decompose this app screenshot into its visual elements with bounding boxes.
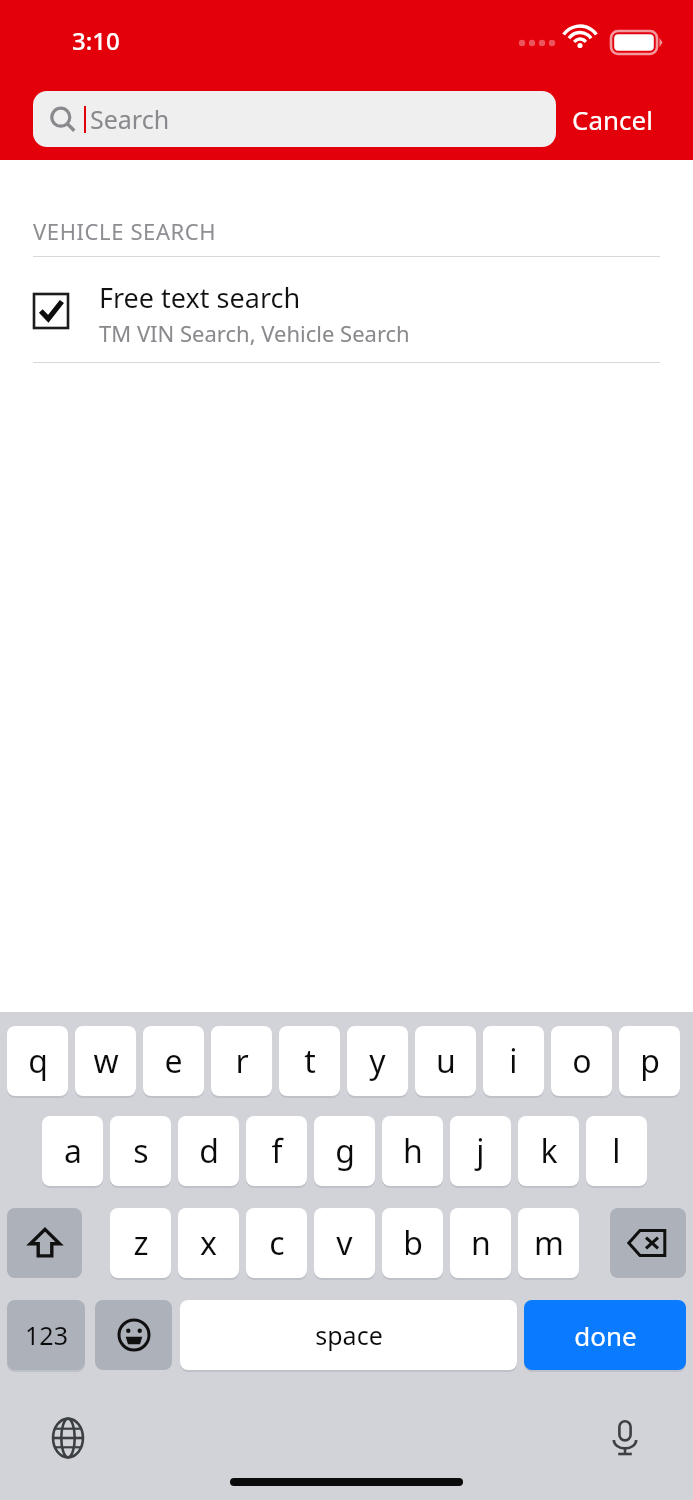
button[interactable]: Free text search [0, 257, 693, 362]
button[interactable]: 123 [7, 1300, 85, 1370]
button[interactable]: a [42, 1116, 103, 1186]
button[interactable]: u [415, 1026, 476, 1096]
button[interactable]: done [524, 1300, 686, 1370]
staticText: f [271, 1129, 283, 1173]
button[interactable]: j [450, 1116, 511, 1186]
button[interactable]: h [382, 1116, 443, 1186]
button[interactable]: f [246, 1116, 307, 1186]
button[interactable]: p [619, 1026, 680, 1096]
staticText: s [133, 1129, 149, 1173]
button[interactable]: Emoji [95, 1300, 172, 1370]
staticText: Free text search [99, 279, 301, 316]
staticText: n [471, 1221, 491, 1265]
button[interactable]: v [314, 1208, 375, 1278]
button[interactable]: b [382, 1208, 443, 1278]
staticText: 3:10 [72, 24, 120, 57]
staticText: 123 [25, 1318, 68, 1352]
staticText: a [64, 1129, 82, 1173]
button[interactable]: space [180, 1300, 517, 1370]
button[interactable]: Search [33, 91, 556, 147]
staticText: u [436, 1039, 456, 1083]
button[interactable]: Shift [7, 1208, 82, 1278]
staticText: v [336, 1221, 353, 1265]
button[interactable]: e [143, 1026, 204, 1096]
staticText: h [403, 1129, 423, 1173]
button[interactable]: o [551, 1026, 612, 1096]
button[interactable]: i [483, 1026, 544, 1096]
staticText: t [304, 1039, 316, 1083]
staticText: m [534, 1221, 564, 1265]
button[interactable]: t [279, 1026, 340, 1096]
staticText: Search [90, 102, 170, 136]
button[interactable]: x [178, 1208, 239, 1278]
staticText: b [403, 1221, 423, 1265]
button[interactable]: l [586, 1116, 647, 1186]
button[interactable]: z [110, 1208, 171, 1278]
button[interactable]: q [7, 1026, 68, 1096]
staticText: c [269, 1221, 285, 1265]
button[interactable]: s [110, 1116, 171, 1186]
staticText: q [28, 1039, 48, 1083]
button[interactable]: k [518, 1116, 579, 1186]
staticText: g [335, 1129, 355, 1173]
staticText: j [476, 1129, 485, 1173]
staticText: d [199, 1129, 219, 1173]
staticText: k [540, 1129, 558, 1173]
button[interactable]: Cancel [572, 91, 653, 147]
staticText: space [315, 1318, 383, 1352]
button[interactable]: w [75, 1026, 136, 1096]
staticText: TM VIN Search, Vehicle Search [99, 318, 410, 348]
button[interactable]: n [450, 1208, 511, 1278]
staticText: l [612, 1129, 621, 1173]
staticText: z [133, 1221, 149, 1265]
button[interactable]: d [178, 1116, 239, 1186]
staticText: p [640, 1039, 660, 1083]
staticText: e [164, 1039, 183, 1083]
button[interactable]: r [211, 1026, 272, 1096]
staticText: w [93, 1039, 119, 1083]
button[interactable]: g [314, 1116, 375, 1186]
staticText: Cancel [572, 102, 653, 137]
staticText: i [509, 1039, 518, 1083]
button[interactable]: m [518, 1208, 579, 1278]
button[interactable]: Backspace [610, 1208, 686, 1278]
button[interactable]: c [246, 1208, 307, 1278]
staticText: VEHICLE SEARCH [33, 216, 217, 246]
staticText: x [200, 1221, 217, 1265]
button[interactable]: Dictation [597, 1410, 653, 1466]
staticText: done [574, 1318, 637, 1353]
staticText: o [572, 1039, 592, 1083]
staticText: y [369, 1039, 386, 1083]
button[interactable]: Change keyboard [40, 1410, 96, 1466]
staticText: r [235, 1039, 249, 1083]
button[interactable]: y [347, 1026, 408, 1096]
